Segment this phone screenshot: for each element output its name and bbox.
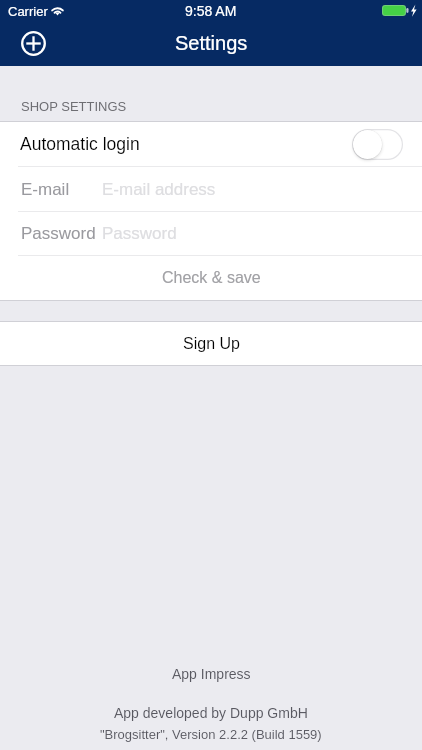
staticText: "Brogsitter", Version 2.2.2 (Build 1559) [100, 727, 322, 742]
staticText: Carrier [8, 4, 48, 19]
button[interactable]: E-mail [0, 167, 422, 211]
staticText: E-mail address [102, 180, 216, 199]
button[interactable]: Check & save [0, 256, 422, 300]
staticText: Password [21, 224, 96, 243]
staticText: Check & save [162, 269, 261, 287]
staticText: Settings [175, 32, 248, 54]
staticText: Sign Up [183, 335, 240, 353]
staticText: 9:58 AM [185, 3, 237, 19]
button[interactable]: Add [13, 23, 54, 64]
staticText: App developed by Dupp GmbH [114, 705, 308, 721]
button[interactable]: Automatic login [352, 129, 403, 160]
staticText: SHOP SETTINGS [21, 99, 127, 114]
button[interactable]: Automatic login [0, 122, 422, 166]
button[interactable]: Password [0, 212, 422, 255]
button[interactable]: Sign Up [0, 322, 422, 365]
staticText: App Impress [172, 666, 251, 682]
staticText: E-mail [21, 180, 70, 199]
staticText: Automatic login [20, 134, 140, 154]
staticText: Password [102, 224, 177, 243]
button[interactable]: App Impress [160, 661, 263, 687]
